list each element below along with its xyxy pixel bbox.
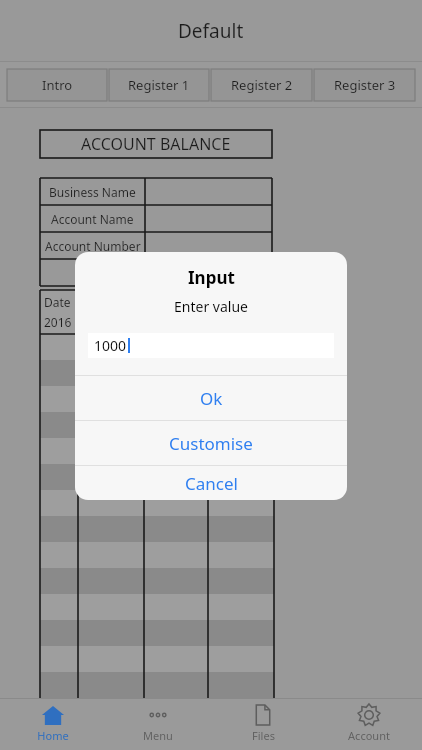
- button[interactable]: 1000: [88, 333, 334, 358]
- button[interactable]: Cancel: [75, 466, 347, 500]
- button[interactable]: Ok: [75, 376, 347, 420]
- staticText: Customise: [169, 432, 253, 455]
- button[interactable]: Intro: [7, 69, 107, 101]
- staticText: Cancel: [185, 472, 238, 495]
- staticText: Account: [348, 728, 390, 743]
- staticText: Files: [252, 728, 275, 743]
- button[interactable]: Home: [0, 702, 105, 750]
- staticText: Default: [178, 18, 244, 44]
- staticText: ACCOUNT BALANCE: [81, 133, 231, 155]
- staticText: Ok: [200, 387, 223, 410]
- staticText: Enter value: [174, 297, 248, 316]
- staticText: Account Name: [51, 211, 134, 227]
- button[interactable]: Register 2: [211, 69, 312, 101]
- staticText: Date: [44, 294, 71, 310]
- button[interactable]: ACCOUNT BALANCE: [40, 130, 272, 158]
- button[interactable]: Account: [316, 702, 422, 750]
- button[interactable]: Customise: [75, 421, 347, 465]
- staticText: 1000: [94, 336, 127, 355]
- staticText: Business Name: [49, 184, 136, 200]
- staticText: Intro: [42, 76, 73, 94]
- staticText: Register 2: [231, 76, 293, 94]
- staticText: 2016: [44, 314, 72, 330]
- staticText: Account Number: [45, 238, 141, 254]
- button[interactable]: Register 3: [314, 69, 415, 101]
- button[interactable]: Menu: [105, 702, 210, 750]
- staticText: Register 1: [128, 76, 190, 94]
- staticText: Register 3: [334, 76, 396, 94]
- staticText: Menu: [143, 728, 173, 743]
- button[interactable]: Register 1: [109, 69, 209, 101]
- staticText: Input: [188, 266, 235, 289]
- staticText: Home: [37, 728, 69, 743]
- button[interactable]: Files: [210, 702, 316, 750]
